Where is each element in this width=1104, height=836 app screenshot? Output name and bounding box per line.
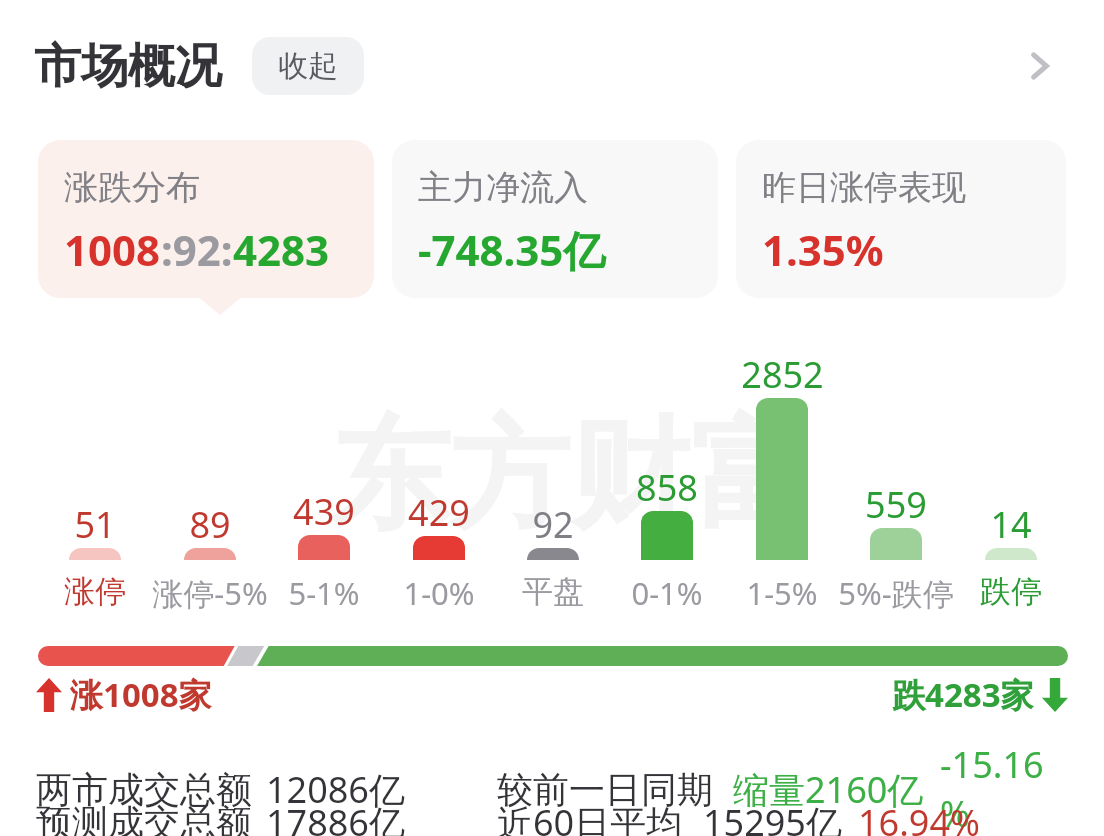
staticText: 1-5% [746,572,818,614]
staticText: 收起 [278,47,338,85]
button[interactable]: 涨跌分布 [38,140,374,298]
staticText: 涨1008家 [70,672,212,717]
staticText: 东方财富 [330,400,810,551]
button[interactable]: 展开更多 [1010,36,1070,96]
staticText: 0-1% [631,572,703,614]
staticText: 92 [532,500,574,549]
staticText: 5%-跌停 [838,572,954,614]
staticText: 昨日涨停表现 [762,166,966,209]
staticText: 近60日平均 [497,798,683,836]
staticText: 858 [636,463,698,512]
staticText: 559 [865,480,927,529]
staticText: 439 [293,487,355,536]
staticText: 1-0% [403,572,475,614]
staticText: -15.16% [940,740,1068,836]
staticText: 两市成交总额 [36,767,252,812]
staticText: 89 [189,500,231,549]
staticText: 16.94% [858,798,980,836]
staticText: 跌4283家 [892,672,1034,717]
staticText: 4283 [233,221,330,278]
staticText: 51 [74,500,116,549]
staticText: 1.35% [762,221,884,278]
staticText: 14 [990,500,1032,549]
staticText: 市场概况 [34,37,222,96]
staticText: 12086亿 [266,765,405,814]
staticText: 预测成交总额 [36,800,252,836]
button[interactable]: 收起 [252,37,364,95]
staticText: 5-1% [288,572,360,614]
staticText: 涨停-5% [152,572,268,614]
button[interactable]: 昨日涨停表现 [736,140,1066,298]
staticText: 主力净流入 [418,166,588,209]
staticText: 涨跌分布 [64,166,200,209]
staticText: 平盘 [522,572,584,611]
staticText: 缩量2160亿 [733,765,924,814]
staticText: -748.35亿 [418,221,606,278]
staticText: 较前一日同期 [497,767,713,812]
staticText: 跌停 [980,572,1042,611]
staticText: 15295亿 [703,798,842,836]
staticText: :92: [161,221,233,278]
button[interactable]: 主力净流入 [392,140,718,298]
staticText: 17886亿 [266,798,405,836]
staticText: 2852 [741,350,824,399]
staticText: 1008 [64,221,161,278]
staticText: 涨停 [64,572,126,611]
staticText: 429 [408,488,470,537]
